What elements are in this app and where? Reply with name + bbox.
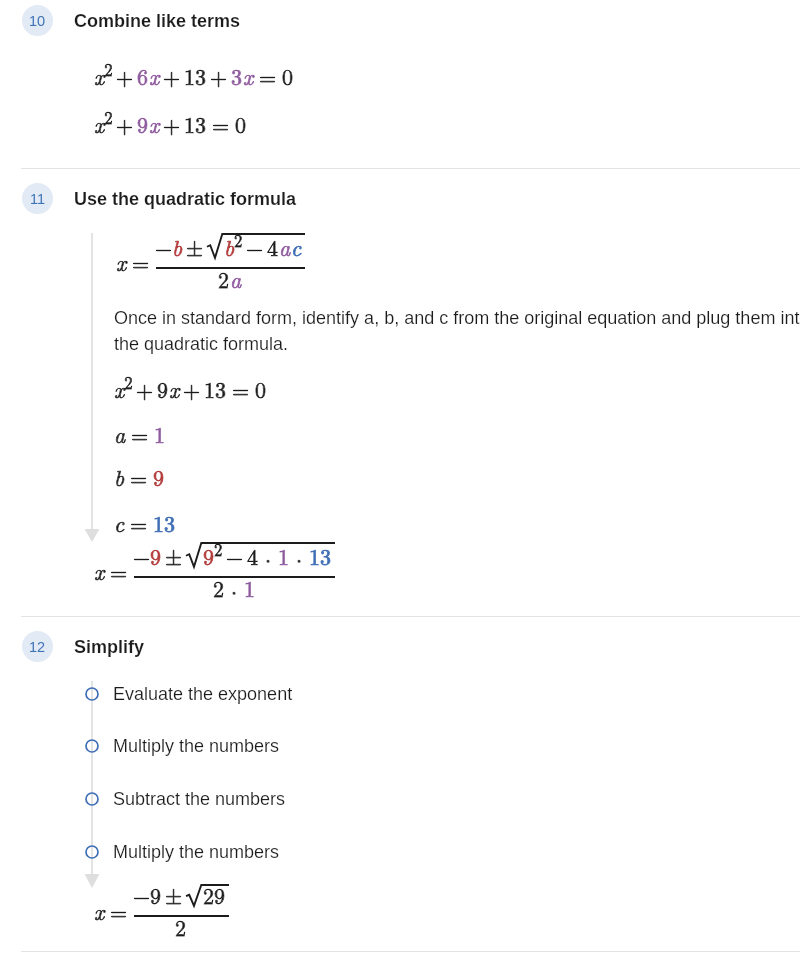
staticText: 3	[231, 60, 243, 91]
staticText: 0	[235, 108, 247, 139]
staticText: −	[133, 540, 151, 571]
staticText: −	[226, 540, 244, 571]
staticText: 9	[153, 461, 165, 492]
staticText: 1	[244, 572, 256, 603]
staticText: 9	[150, 540, 162, 571]
staticText: −	[226, 540, 244, 571]
button[interactable]: 10	[0, 5, 800, 36]
staticText: =	[131, 418, 149, 449]
staticText: 4	[247, 540, 259, 571]
staticText: 1	[244, 572, 256, 603]
staticText: x	[116, 246, 127, 277]
staticText: a	[230, 263, 242, 294]
staticText: 13	[184, 108, 207, 139]
staticText: 11	[30, 191, 46, 207]
staticText: 0	[282, 60, 294, 91]
staticText: Once in standard form, identify a, b, an…	[114, 308, 800, 354]
staticText: 2	[175, 911, 187, 942]
staticText: x	[149, 108, 160, 139]
staticText: 92	[203, 537, 223, 571]
staticText: 13	[153, 507, 176, 538]
staticText: Multiply the numbers	[113, 842, 280, 862]
staticText: 13	[184, 108, 207, 139]
staticText: b	[172, 231, 183, 262]
staticText: 29	[203, 879, 226, 910]
staticText: x	[169, 373, 180, 404]
staticText: Simplify	[74, 637, 145, 657]
staticText: 1	[278, 540, 290, 571]
staticText: 1	[278, 540, 290, 571]
staticText: +	[183, 373, 201, 404]
staticText: ⋅	[231, 581, 238, 603]
button[interactable]: 11	[0, 183, 800, 214]
staticText: 6	[137, 60, 149, 91]
staticText: 13	[184, 60, 207, 91]
staticText: b2	[224, 228, 243, 262]
staticText: +	[183, 373, 201, 404]
staticText: Subtract the numbers	[113, 789, 286, 809]
staticText: 13	[204, 373, 227, 404]
staticText: a	[279, 231, 291, 262]
staticText: =	[232, 373, 250, 404]
staticText: 2	[213, 572, 225, 603]
staticText: x	[169, 373, 180, 404]
staticText: x2	[94, 57, 113, 91]
staticText: 9	[150, 879, 162, 910]
staticText: 1	[154, 418, 166, 449]
staticText: a	[230, 263, 242, 294]
staticText: ⋅	[265, 549, 272, 571]
staticText: +	[163, 60, 181, 91]
staticText: =	[130, 507, 148, 538]
staticText: ⋅	[265, 549, 272, 571]
staticText: +	[210, 60, 228, 91]
staticText: =	[110, 895, 128, 926]
staticText: ±	[165, 879, 183, 910]
staticText: x	[243, 60, 254, 91]
staticText: 4	[267, 231, 279, 262]
staticText: −	[133, 879, 151, 910]
staticText: x2	[114, 370, 133, 404]
button[interactable]: Multiply the numbers	[0, 732, 800, 760]
staticText: ⋅	[296, 549, 303, 571]
staticText: =	[232, 373, 250, 404]
staticText: x2	[94, 57, 113, 91]
staticText: x	[94, 555, 105, 586]
staticText: =	[259, 60, 277, 91]
staticText: ±	[165, 879, 183, 910]
staticText: b	[114, 461, 125, 492]
staticText: =	[110, 555, 128, 586]
staticText: 6	[137, 60, 149, 91]
staticText: a	[279, 231, 291, 262]
staticText: 3	[231, 60, 243, 91]
staticText: x2	[114, 370, 133, 404]
staticText: 0	[255, 373, 267, 404]
staticText: =	[212, 108, 230, 139]
staticText: +	[210, 60, 228, 91]
staticText: −	[155, 231, 173, 262]
button[interactable]: Evaluate the exponent	[0, 680, 800, 708]
staticText: ±	[165, 540, 183, 571]
staticText: 13	[309, 540, 332, 571]
staticText: =	[259, 60, 277, 91]
staticText: 9	[157, 373, 169, 404]
button[interactable]: 12	[0, 631, 800, 662]
staticText: x	[149, 60, 160, 91]
staticText: 2	[218, 263, 230, 294]
staticText: =	[130, 461, 148, 492]
staticText: ⋅	[231, 581, 238, 603]
staticText: 92	[203, 537, 223, 571]
staticText: −	[246, 231, 264, 262]
staticText: 0	[235, 108, 247, 139]
staticText: 13	[153, 507, 176, 538]
staticText: =	[130, 461, 148, 492]
staticText: b	[172, 231, 183, 262]
staticText: 10	[29, 13, 46, 29]
staticText: a	[114, 418, 126, 449]
staticText: =	[132, 246, 150, 277]
staticText: x	[149, 108, 160, 139]
button[interactable]: Multiply the numbers	[0, 838, 800, 866]
staticText: c	[114, 507, 125, 538]
staticText: +	[163, 108, 181, 139]
staticText: 12	[29, 639, 46, 655]
button[interactable]: Subtract the numbers	[0, 785, 800, 813]
